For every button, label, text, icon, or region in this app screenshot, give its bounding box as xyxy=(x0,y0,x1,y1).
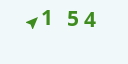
staticText: 1 xyxy=(41,3,54,32)
staticText: 5 xyxy=(67,4,80,33)
staticText: 4 xyxy=(84,5,97,34)
